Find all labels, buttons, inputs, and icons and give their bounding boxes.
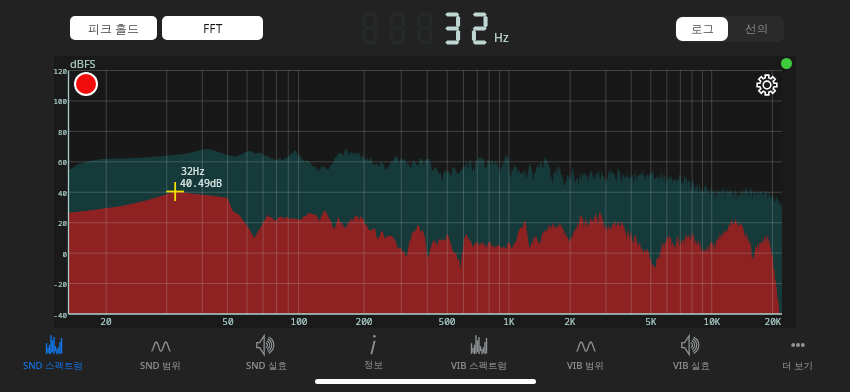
staticText: VIB 스펙트럼 <box>451 359 507 372</box>
button[interactable]: SND 실효 <box>214 332 320 384</box>
staticText: VIB 범위 <box>567 359 604 372</box>
button[interactable]: SND 스펙트럼 <box>0 332 107 384</box>
button[interactable]: VIB 실효 <box>638 332 744 384</box>
button[interactable]: 선의 <box>729 16 784 42</box>
button[interactable]: Record <box>74 72 98 96</box>
staticText: 32Hz <box>181 164 205 178</box>
staticText: -40 <box>47 310 67 320</box>
staticText: 40.49dB <box>180 176 222 190</box>
button[interactable]: FFT <box>162 16 263 40</box>
staticText: 선의 <box>745 22 768 36</box>
staticText: 500 <box>430 315 464 328</box>
staticText: 20 <box>89 315 123 328</box>
staticText: 100 <box>47 96 67 106</box>
button[interactable]: VIB 범위 <box>532 332 638 384</box>
staticText: VIB 실효 <box>673 359 710 372</box>
staticText: 200 <box>347 315 381 328</box>
button[interactable]: Settings <box>756 74 778 96</box>
staticText: 60 <box>47 157 67 167</box>
staticText: SND 범위 <box>140 359 182 372</box>
button[interactable]: 피크 홀드 <box>70 16 157 40</box>
staticText: 10K <box>695 315 729 328</box>
staticText: 로그 <box>691 22 714 36</box>
button[interactable]: 정보 <box>320 332 426 384</box>
staticText: 2K <box>553 315 587 328</box>
button[interactable]: 로그 <box>676 17 728 41</box>
button[interactable]: SND 범위 <box>107 332 214 384</box>
staticText: dBFS <box>70 56 96 71</box>
button[interactable]: VIB 스펙트럼 <box>426 332 532 384</box>
staticText: 40 <box>47 188 67 198</box>
staticText: FFT <box>203 20 223 36</box>
staticText: 더 보기 <box>782 359 813 372</box>
staticText: -20 <box>47 279 67 289</box>
staticText: SND 스펙트럼 <box>23 359 84 372</box>
staticText: Hz <box>494 29 509 45</box>
staticText: SND 실효 <box>246 359 288 372</box>
button[interactable]: 더 보기 <box>744 332 850 384</box>
staticText: 정보 <box>364 359 383 371</box>
staticText: 120 <box>47 66 67 76</box>
staticText: 20 <box>47 218 67 228</box>
staticText: 20K <box>756 315 790 328</box>
staticText: 50 <box>211 315 245 328</box>
staticText: 0 <box>47 249 67 259</box>
staticText: 100 <box>282 315 316 328</box>
staticText: 80 <box>47 127 67 137</box>
staticText: 피크 홀드 <box>88 20 140 36</box>
staticText: 1K <box>492 315 526 328</box>
staticText: 5K <box>634 315 668 328</box>
